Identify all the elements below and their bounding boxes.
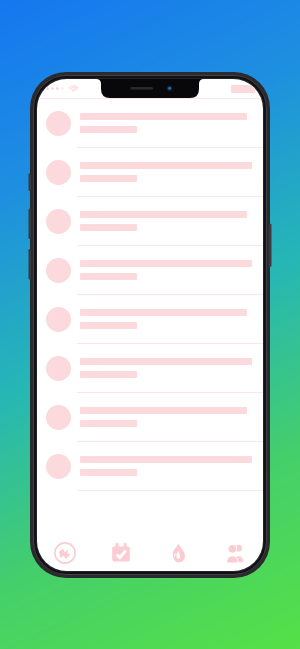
button[interactable]	[37, 99, 263, 147]
button[interactable]: Events	[93, 535, 149, 571]
button[interactable]	[37, 393, 263, 441]
button[interactable]: Trending	[149, 535, 206, 571]
button[interactable]	[37, 197, 263, 245]
button[interactable]: World	[37, 535, 93, 571]
button[interactable]	[37, 148, 263, 196]
button[interactable]	[37, 442, 263, 490]
button[interactable]	[37, 295, 263, 343]
button[interactable]	[37, 344, 263, 392]
button[interactable]: Friends	[206, 535, 263, 571]
button[interactable]	[37, 246, 263, 294]
